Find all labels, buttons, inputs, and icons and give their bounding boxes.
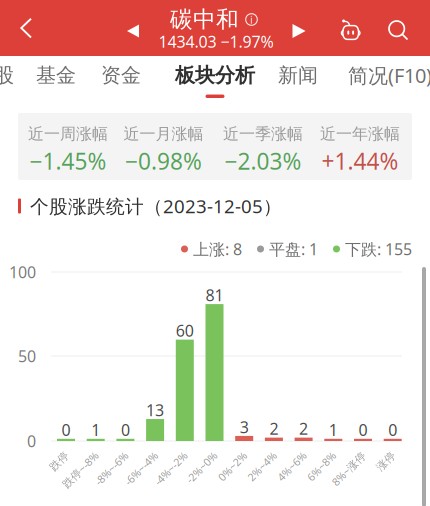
staticText: −2.03%: [224, 146, 301, 176]
staticText: −1.45%: [29, 146, 106, 176]
staticText: 2: [299, 418, 308, 439]
button[interactable]: 简况(F10): [347, 56, 430, 100]
staticText: 股: [0, 63, 14, 88]
staticText: 简况(F10): [348, 62, 430, 89]
button[interactable]: Assistant: [331, 7, 371, 55]
staticText: 碳中和: [170, 6, 239, 33]
staticText: −0.98%: [125, 146, 202, 176]
staticText: 平盘: 1: [269, 238, 318, 260]
staticText: 0: [358, 419, 367, 440]
staticText: 近一月涨幅: [123, 124, 203, 144]
staticText: i: [250, 12, 253, 27]
staticText: 1: [329, 419, 338, 440]
staticText: 60: [176, 320, 194, 341]
button[interactable]: 基金: [25, 56, 87, 100]
button[interactable]: Next: [282, 9, 316, 53]
button[interactable]: 新闻: [267, 56, 329, 100]
staticText: 0: [27, 430, 36, 452]
staticText: 0: [388, 419, 397, 440]
staticText: 13: [146, 399, 164, 421]
staticText: 下跌: 155: [345, 238, 412, 260]
staticText: 近一周涨幅: [28, 124, 108, 144]
staticText: 2%~4%: [247, 465, 283, 480]
button[interactable]: 股: [0, 56, 21, 100]
staticText: -2%~0%: [184, 465, 223, 480]
button[interactable]: Previous: [116, 9, 150, 53]
staticText: 2: [269, 418, 278, 439]
staticText: +1.44%: [321, 146, 398, 176]
staticText: 0: [121, 419, 130, 440]
staticText: 资金: [101, 63, 141, 88]
staticText: 3: [240, 416, 249, 437]
staticText: 基金: [36, 63, 76, 88]
staticText: 跌停: [53, 466, 75, 479]
staticText: 涨停: [380, 466, 402, 479]
staticText: 个股涨跌统计（2023-12-05）: [30, 194, 282, 218]
button[interactable]: Search: [379, 7, 419, 55]
staticText: 跌停~-8%: [59, 465, 105, 480]
button[interactable]: Back: [1, 0, 51, 56]
staticText: 上涨: 8: [193, 238, 242, 260]
staticText: 4%~6%: [276, 465, 312, 480]
button[interactable]: 板块分析: [172, 56, 258, 100]
staticText: 0: [61, 419, 70, 440]
staticText: 8%~涨停: [329, 465, 372, 480]
staticText: 近一季涨幅: [223, 124, 303, 144]
staticText: -6%~-4%: [122, 465, 164, 480]
staticText: 1434.03 −1.97%: [158, 31, 273, 52]
staticText: 50: [18, 345, 36, 367]
staticText: 板块分析: [175, 63, 255, 88]
staticText: 100: [9, 261, 36, 283]
staticText: 81: [205, 284, 223, 306]
staticText: 新闻: [278, 63, 318, 88]
staticText: -4%~-2%: [152, 465, 194, 480]
staticText: 近一年涨幅: [320, 124, 400, 144]
staticText: 1: [91, 419, 100, 440]
staticText: 6%~8%: [306, 465, 342, 480]
staticText: 0%~2%: [217, 465, 253, 480]
staticText: -8%~-6%: [92, 465, 134, 480]
button[interactable]: 资金: [90, 56, 152, 100]
